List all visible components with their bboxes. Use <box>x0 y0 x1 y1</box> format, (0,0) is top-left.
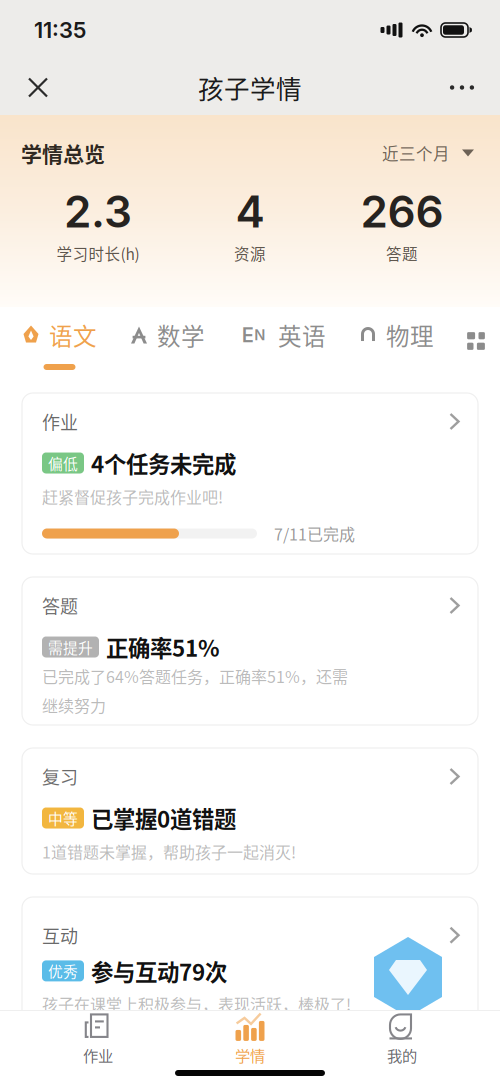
staticText: 参与互动79次 <box>91 955 227 987</box>
staticText: 学情总览 <box>21 138 105 168</box>
staticText: 2.3 <box>64 185 132 238</box>
staticText: 作业 <box>42 408 78 435</box>
button[interactable]: 近三个月 <box>382 137 474 169</box>
button[interactable]: More options <box>434 61 490 113</box>
button[interactable]: 答题 <box>22 577 478 725</box>
staticText: 4个任务未完成 <box>91 447 236 479</box>
staticText: 学习时长(h) <box>56 242 139 264</box>
staticText: 孩子学情 <box>198 69 302 106</box>
button[interactable]: 学情 <box>174 1009 326 1066</box>
staticText: 近三个月 <box>382 141 450 165</box>
staticText: 偏低 <box>48 452 78 474</box>
staticText: 优秀 <box>48 960 78 982</box>
staticText: 需提升 <box>48 636 93 658</box>
button[interactable]: 作业 <box>22 1009 174 1066</box>
staticText: 赶紧督促孩子完成作业吧! <box>42 485 223 508</box>
staticText: 数学 <box>157 318 205 352</box>
button[interactable]: 作业 <box>22 393 478 554</box>
button[interactable]: Close <box>10 61 66 113</box>
staticText: 已掌握0道错题 <box>91 802 236 834</box>
staticText: 1道错题未掌握，帮助孩子一起消灭! <box>42 840 296 863</box>
staticText: 答题 <box>386 242 418 264</box>
staticText: 中等 <box>48 807 78 829</box>
button[interactable]: 语文 <box>22 307 97 375</box>
staticText: 语文 <box>49 318 97 352</box>
button[interactable]: E <box>238 307 326 375</box>
staticText: 266 <box>360 185 443 238</box>
button[interactable]: 我的 <box>326 1009 478 1066</box>
button[interactable]: 复习 <box>22 748 478 874</box>
staticText: 4 <box>235 185 264 238</box>
staticText: 孩子在课堂上积极参与，表现活跃，棒极了! <box>42 992 351 1015</box>
button[interactable]: 物理 <box>359 307 434 375</box>
button[interactable]: 互动 <box>22 897 478 1040</box>
staticText: 复习 <box>42 763 78 790</box>
staticText: 学情 <box>235 1044 265 1066</box>
staticText: 资源 <box>234 242 266 264</box>
staticText: 答题 <box>42 592 78 619</box>
staticText: 正确率51% <box>106 631 220 663</box>
staticText: 我的 <box>387 1044 417 1066</box>
button[interactable]: 数学 <box>130 307 205 375</box>
staticText: 7/11已完成 <box>274 522 355 545</box>
staticText: 作业 <box>83 1044 113 1066</box>
staticText: 英语 <box>278 318 326 352</box>
staticText: 互动 <box>42 922 78 948</box>
staticText: E <box>242 323 254 347</box>
staticText: N <box>254 326 265 344</box>
staticText: 物理 <box>386 318 434 352</box>
staticText: 已完成了64%答题任务，正确率51%，还需 继续努力 <box>42 664 348 717</box>
staticText: 11:35 <box>34 17 86 43</box>
button[interactable]: All subjects <box>467 316 485 366</box>
